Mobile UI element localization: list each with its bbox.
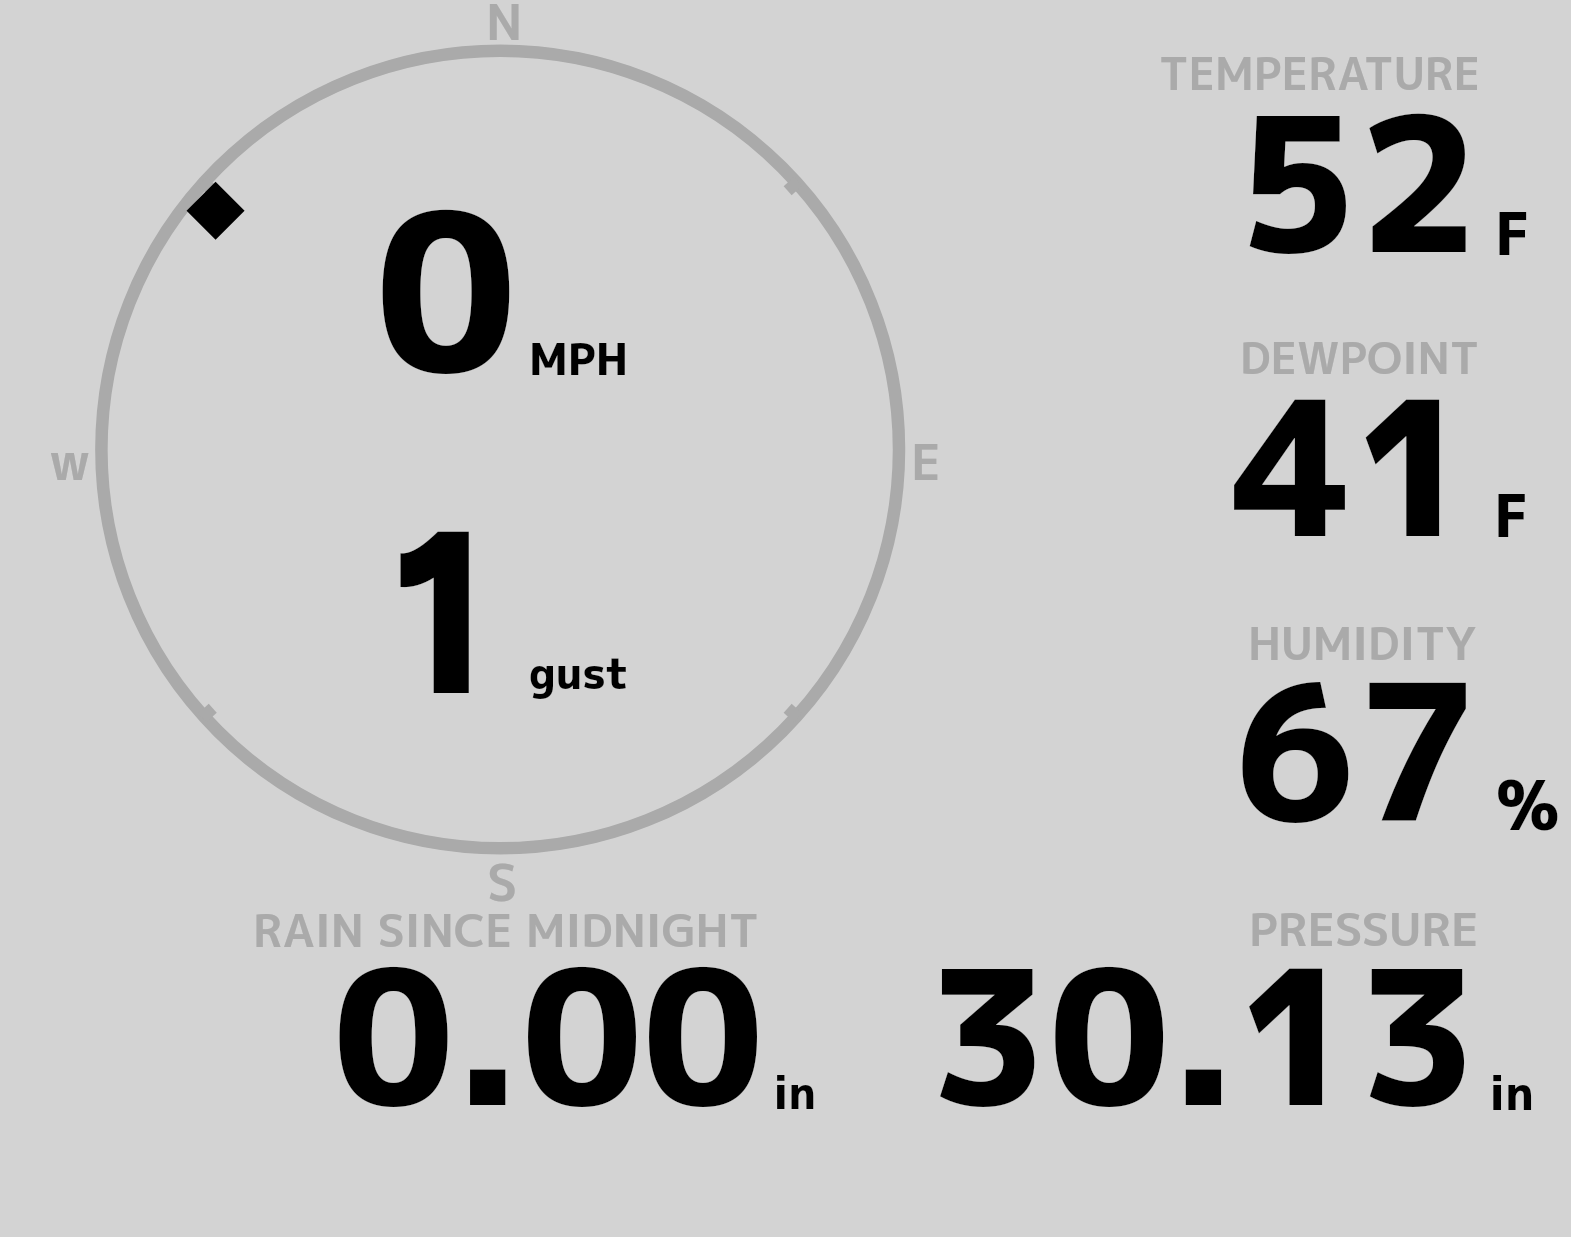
staticText: S [487,847,518,917]
button[interactable]: Wind speed and direction gauge [45,0,1005,890]
staticText: in [1489,1060,1534,1124]
staticText: 30.13 [928,905,1479,1164]
staticText: DEWPOINT [1240,327,1480,388]
staticText: 0 [375,137,517,442]
staticText: TEMPERATURE [1159,42,1481,104]
staticText: gust [529,642,629,703]
staticText: PRESSURE [1249,897,1479,961]
staticText: MPH [529,328,629,389]
button[interactable]: Temperature 52 degrees Fahrenheit [1020,20,1560,285]
staticText: N [486,0,523,56]
staticText: F [1495,192,1530,274]
button[interactable]: Dewpoint 41 degrees Fahrenheit [1020,305,1560,570]
staticText: HUMIDITY [1248,612,1477,675]
button[interactable]: Humidity 67 percent [1020,590,1560,855]
staticText: w [49,426,91,495]
staticText: 67 [1234,619,1479,881]
staticText: E [911,427,941,496]
staticText: RAIN SINCE MIDNIGHT [253,899,759,962]
staticText: % [1496,757,1560,851]
staticText: F [1494,475,1529,556]
staticText: 0.00 [333,905,764,1165]
staticText: in [773,1061,817,1123]
staticText: 41 [1232,335,1476,596]
button[interactable]: Pressure 30.13 inches [1020,875,1560,1140]
staticText: 1 [391,474,490,750]
button[interactable]: Rain since midnight 0.00 inches [200,875,840,1140]
staticText: 52 [1237,52,1480,312]
